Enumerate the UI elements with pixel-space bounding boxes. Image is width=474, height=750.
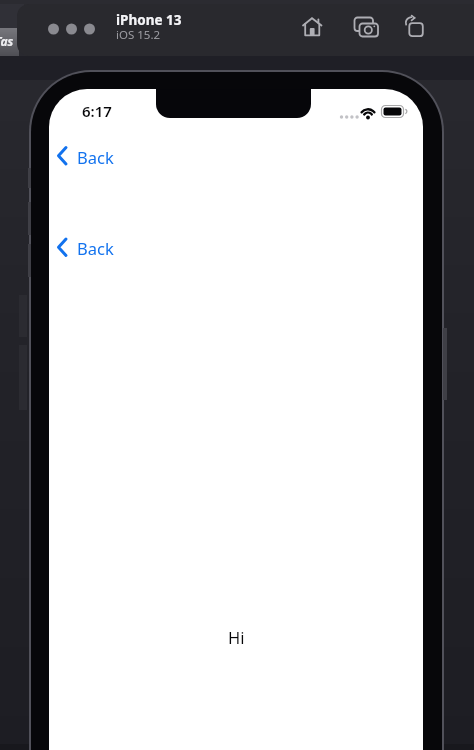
staticText: iOS 15.2 <box>116 27 161 43</box>
staticText: Tas <box>0 33 14 49</box>
staticText: 6:17 <box>82 101 112 121</box>
staticText: Hi <box>228 626 245 648</box>
staticText: Back <box>77 237 114 259</box>
staticText: Back <box>77 146 114 168</box>
staticText: iPhone 13 <box>116 11 182 29</box>
